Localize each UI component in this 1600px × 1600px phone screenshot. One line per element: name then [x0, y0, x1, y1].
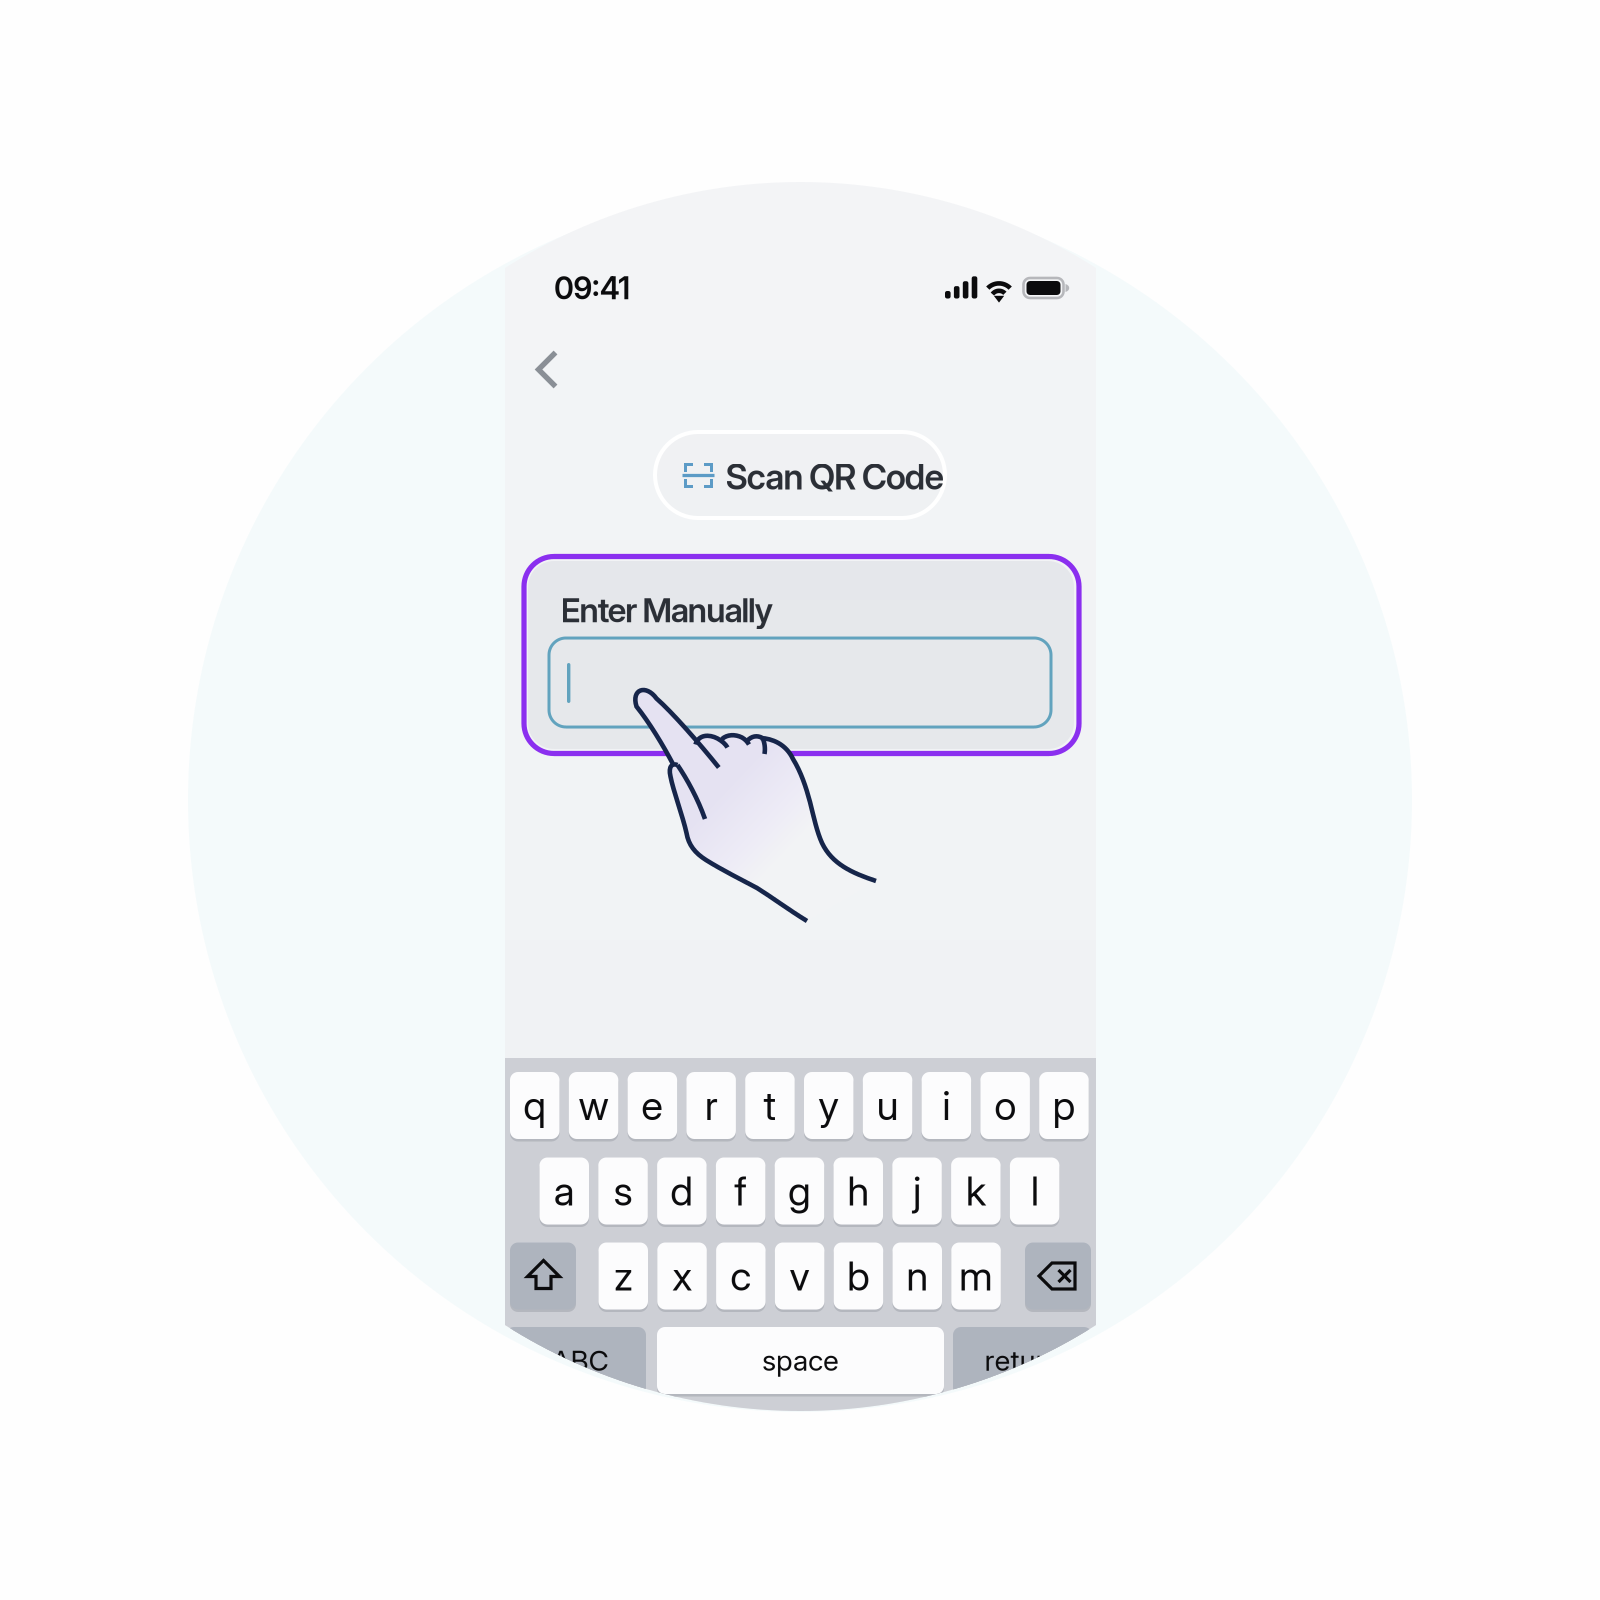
staticText: a [554, 1167, 575, 1215]
button[interactable]: a [539, 1157, 589, 1224]
button[interactable]: Delete [0, 0, 1600, 1600]
staticText: space [762, 1344, 839, 1377]
button[interactable]: x [657, 1242, 707, 1309]
staticText: d [670, 1167, 693, 1215]
button[interactable]: e [628, 1072, 677, 1139]
staticText: p [1052, 1081, 1075, 1130]
button[interactable]: h [833, 1157, 883, 1224]
button[interactable]: l [1010, 1157, 1059, 1224]
button[interactable]: Enter Manually [0, 0, 1600, 1600]
button[interactable]: Back [0, 0, 1600, 1600]
staticText: q [523, 1081, 546, 1130]
staticText: ABC [551, 1344, 608, 1377]
staticText: c [730, 1252, 751, 1300]
staticText: Scan QR Code [725, 456, 944, 498]
staticText: 09:41 [554, 269, 630, 306]
staticText: j [913, 1167, 921, 1215]
button[interactable]: q [510, 1072, 559, 1139]
button[interactable]: p [1039, 1072, 1089, 1139]
button[interactable]: w [569, 1072, 618, 1139]
staticText: b [847, 1252, 870, 1300]
staticText: x [672, 1252, 692, 1300]
button[interactable]: j [892, 1157, 942, 1224]
button[interactable]: f [716, 1157, 765, 1224]
staticText: l [1031, 1167, 1039, 1215]
staticText: r [705, 1081, 718, 1130]
staticText: e [641, 1081, 663, 1130]
staticText: z [614, 1252, 633, 1300]
staticText: w [578, 1081, 608, 1130]
staticText: k [966, 1167, 986, 1215]
button[interactable]: Shift [0, 0, 1600, 1600]
staticText: f [734, 1167, 747, 1215]
button[interactable]: m [951, 1242, 1001, 1309]
staticText: h [847, 1167, 869, 1215]
staticText: m [959, 1252, 993, 1300]
button[interactable]: n [892, 1242, 942, 1309]
staticText: t [763, 1081, 776, 1130]
staticText: s [613, 1167, 632, 1215]
button[interactable]: o [980, 1072, 1030, 1139]
button[interactable]: d [657, 1157, 707, 1224]
button[interactable]: Scan QR Code [0, 0, 1600, 1600]
button[interactable]: g [775, 1157, 824, 1224]
staticText: o [994, 1081, 1016, 1130]
staticText: u [876, 1081, 898, 1130]
staticText: return [984, 1344, 1061, 1377]
staticText: g [788, 1167, 811, 1215]
staticText: v [789, 1252, 810, 1300]
button[interactable]: y [804, 1072, 853, 1139]
button[interactable]: s [598, 1157, 648, 1224]
button[interactable]: b [834, 1242, 883, 1309]
button[interactable]: k [951, 1157, 1001, 1224]
staticText: y [818, 1081, 839, 1130]
button[interactable]: v [775, 1242, 824, 1309]
button[interactable]: ABC [510, 1327, 650, 1394]
button[interactable]: u [863, 1072, 912, 1139]
button[interactable]: space [657, 1327, 944, 1394]
staticText: i [942, 1081, 950, 1130]
button[interactable]: r [686, 1072, 736, 1139]
button[interactable]: return [953, 1327, 1092, 1394]
button[interactable]: i [922, 1072, 971, 1139]
button[interactable]: z [598, 1242, 648, 1309]
staticText: Enter Manually [561, 590, 773, 630]
button[interactable]: c [716, 1242, 766, 1309]
staticText: n [906, 1252, 928, 1300]
button[interactable]: t [745, 1072, 795, 1139]
